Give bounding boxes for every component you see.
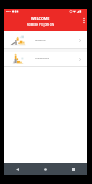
button[interactable]: Inventory [4, 31, 87, 49]
staticText: ROMESH F13_DI9 ON [27, 23, 54, 27]
button[interactable]: Transactions [4, 52, 87, 67]
button[interactable]: More options [79, 15, 89, 25]
button[interactable]: Home [31, 163, 59, 175]
staticText: Transactions [35, 56, 50, 59]
button[interactable]: Back [4, 163, 31, 175]
staticText: 9:41 [6, 9, 11, 12]
staticText: Inventory [35, 38, 46, 41]
staticText: WELCOME [31, 16, 50, 21]
button[interactable]: Recent apps [59, 163, 87, 175]
